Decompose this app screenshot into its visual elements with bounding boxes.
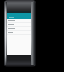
button[interactable] (7, 13, 31, 19)
button[interactable] (7, 19, 31, 22)
button[interactable] (7, 23, 31, 26)
button[interactable] (7, 31, 31, 34)
button[interactable] (7, 27, 31, 30)
